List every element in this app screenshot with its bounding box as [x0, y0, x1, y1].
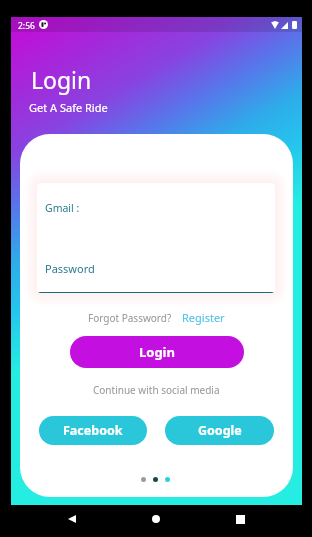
staticText: Login [139, 343, 175, 361]
staticText: Facebook [63, 422, 123, 439]
staticText: Gmail : [45, 201, 80, 215]
staticText: Forgot Password? [88, 311, 172, 325]
button[interactable]: Back [67, 514, 77, 524]
button[interactable]: Facebook [39, 416, 147, 445]
button[interactable]: Register [182, 310, 225, 325]
button[interactable]: Login [70, 336, 244, 368]
staticText: Login [31, 64, 92, 95]
button[interactable]: Home [152, 515, 160, 523]
staticText: Password [45, 261, 95, 276]
button[interactable]: Google [165, 416, 274, 445]
staticText: 2:56 [18, 20, 35, 32]
staticText: Google [198, 422, 242, 439]
staticText: Get A Safe Ride [29, 100, 108, 115]
staticText: Continue with social media [93, 383, 220, 397]
